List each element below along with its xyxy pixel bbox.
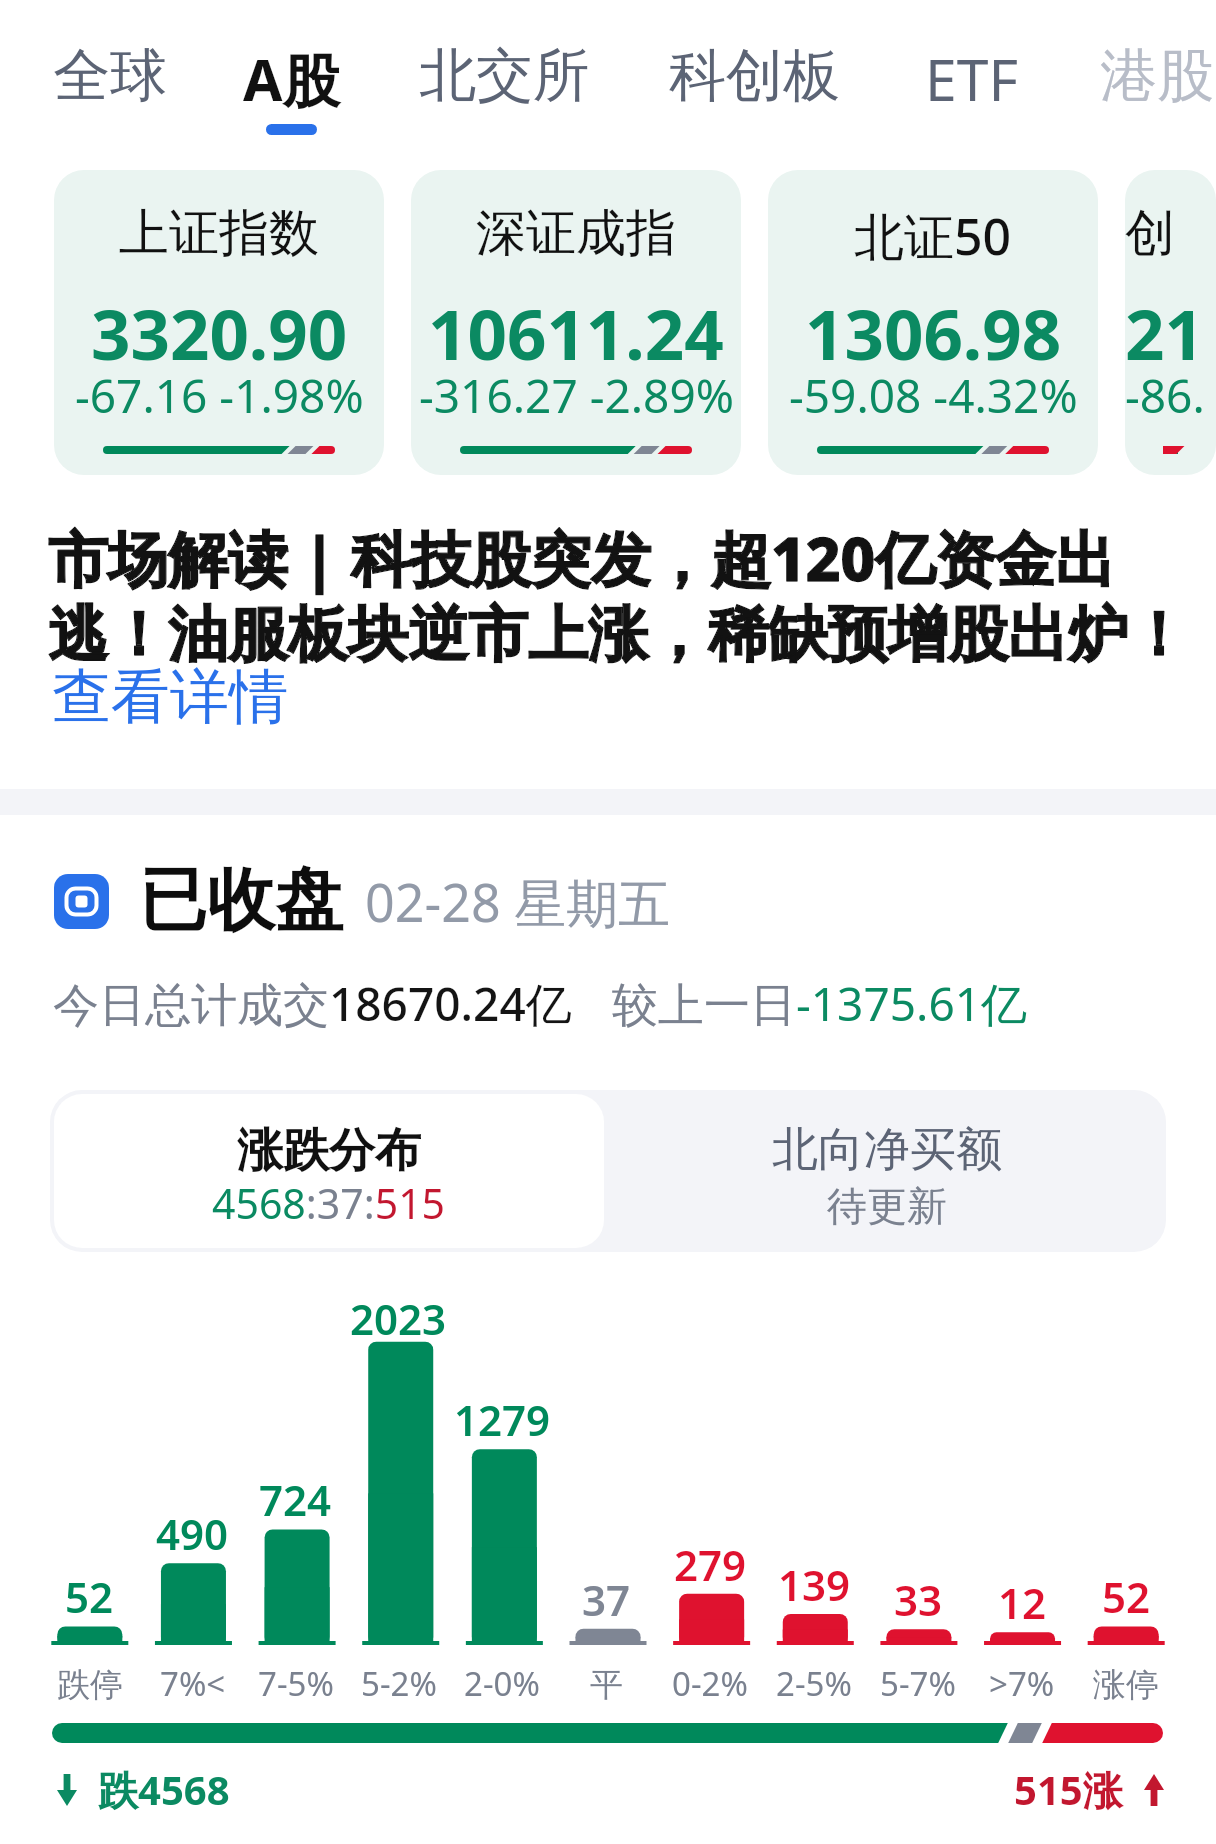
button[interactable]: 上证指数: [54, 170, 384, 475]
staticText: A股: [243, 40, 340, 118]
staticText: 1279: [454, 1391, 551, 1448]
staticText: 跌停: [57, 1664, 123, 1706]
button[interactable]: Market status: [54, 874, 109, 929]
staticText: 515涨: [1014, 1762, 1123, 1817]
button[interactable]: 查看详情: [52, 660, 288, 734]
staticText: 涨跌分布: [237, 1122, 421, 1180]
staticText: -316.27 -2.89%: [419, 364, 734, 427]
button[interactable]: 139: [762, 1290, 866, 1730]
staticText: 10611.24: [428, 286, 724, 380]
staticText: 5-2%: [361, 1661, 437, 1706]
staticText: >7%: [989, 1661, 1055, 1706]
staticText: -67.16 -1.98%: [75, 364, 364, 427]
button[interactable]: 279: [658, 1290, 762, 1730]
button[interactable]: 创业板指: [1125, 170, 1216, 475]
staticText: 5-7%: [880, 1661, 956, 1706]
staticText: 今日总计成交18670.24亿: [53, 972, 572, 1035]
staticText: 4568:37:515: [212, 1175, 446, 1231]
button[interactable]: 52: [38, 1290, 141, 1730]
staticText: -86.19 -3.83%: [1125, 364, 1216, 427]
button[interactable]: 52: [1074, 1290, 1178, 1730]
button[interactable]: 2023: [347, 1290, 450, 1730]
staticText: 37: [582, 1571, 631, 1628]
staticText: -59.08 -4.32%: [789, 364, 1078, 427]
staticText: 0-2%: [672, 1661, 748, 1706]
staticText: 较上一日-1375.61亿: [612, 972, 1028, 1035]
staticText: 2164.70: [1125, 286, 1216, 380]
staticText: ETF: [925, 40, 1018, 118]
button[interactable]: 12: [970, 1290, 1074, 1730]
button[interactable]: 37: [554, 1290, 658, 1730]
staticText: 北证50: [854, 202, 1012, 270]
button[interactable]: 深证成指: [411, 170, 741, 475]
staticText: 2-0%: [464, 1661, 540, 1706]
staticText: 市场解读 | 科技股突发，超120亿资金出 逃！油服板块逆市上涨，稀缺预增股出炉…: [48, 517, 1188, 667]
button[interactable]: 北证50: [768, 170, 1098, 475]
staticText: 490: [156, 1505, 229, 1562]
staticText: 02-28 星期五: [365, 866, 671, 937]
staticText: 平: [590, 1664, 623, 1706]
staticText: 涨停: [1093, 1664, 1159, 1706]
button[interactable]: 490: [141, 1290, 244, 1730]
staticText: 279: [674, 1536, 747, 1593]
button[interactable]: 跌4568: [57, 1762, 230, 1817]
button[interactable]: 515涨: [1014, 1762, 1164, 1817]
staticText: 33: [894, 1571, 943, 1628]
button[interactable]: 科创板: [614, 40, 894, 140]
staticText: 2023: [350, 1290, 447, 1341]
button[interactable]: 市场解读 | 科技股突发，超120亿资金出 逃！油服板块逆市上涨，稀缺预增股出炉…: [48, 517, 1208, 667]
staticText: 724: [259, 1471, 332, 1528]
staticText: 待更新: [827, 1181, 947, 1231]
staticText: 北交所: [419, 40, 590, 112]
button[interactable]: 1279: [450, 1290, 554, 1730]
staticText: 查看详情: [52, 660, 288, 734]
button[interactable]: 涨跌分布: [54, 1094, 604, 1248]
staticText: 港股: [1100, 40, 1214, 112]
staticText: 市场解读 | 科技股突发，超120亿资金出 逃！油服板块逆市上涨，稀缺预增股出炉…: [48, 517, 1188, 667]
button[interactable]: 全球: [0, 40, 250, 140]
button[interactable]: 33: [866, 1290, 970, 1730]
staticText: 1306.98: [805, 286, 1062, 380]
staticText: 3320.90: [91, 286, 348, 380]
staticText: 52: [1102, 1568, 1151, 1625]
staticText: 7-5%: [258, 1661, 334, 1706]
button[interactable]: 北向净买额: [608, 1090, 1166, 1252]
staticText: 全球: [53, 40, 167, 112]
button[interactable]: A股: [151, 40, 431, 140]
staticText: 跌4568: [98, 1762, 230, 1817]
staticText: 7%<: [160, 1661, 226, 1706]
staticText: 创业板指: [1125, 202, 1216, 265]
staticText: 深证成指: [476, 202, 676, 265]
staticText: 12: [998, 1574, 1047, 1631]
button[interactable]: ETF: [831, 40, 1111, 140]
button[interactable]: 港股: [1017, 40, 1216, 140]
button[interactable]: 北交所: [364, 40, 644, 140]
button[interactable]: 724: [244, 1290, 347, 1730]
staticText: 2-5%: [776, 1661, 852, 1706]
staticText: 52: [65, 1568, 114, 1625]
staticText: 科创板: [669, 40, 840, 112]
staticText: 已收盘: [139, 858, 343, 944]
staticText: 北向净买额: [772, 1121, 1002, 1179]
staticText: 上证指数: [119, 202, 319, 265]
staticText: 139: [778, 1556, 851, 1613]
